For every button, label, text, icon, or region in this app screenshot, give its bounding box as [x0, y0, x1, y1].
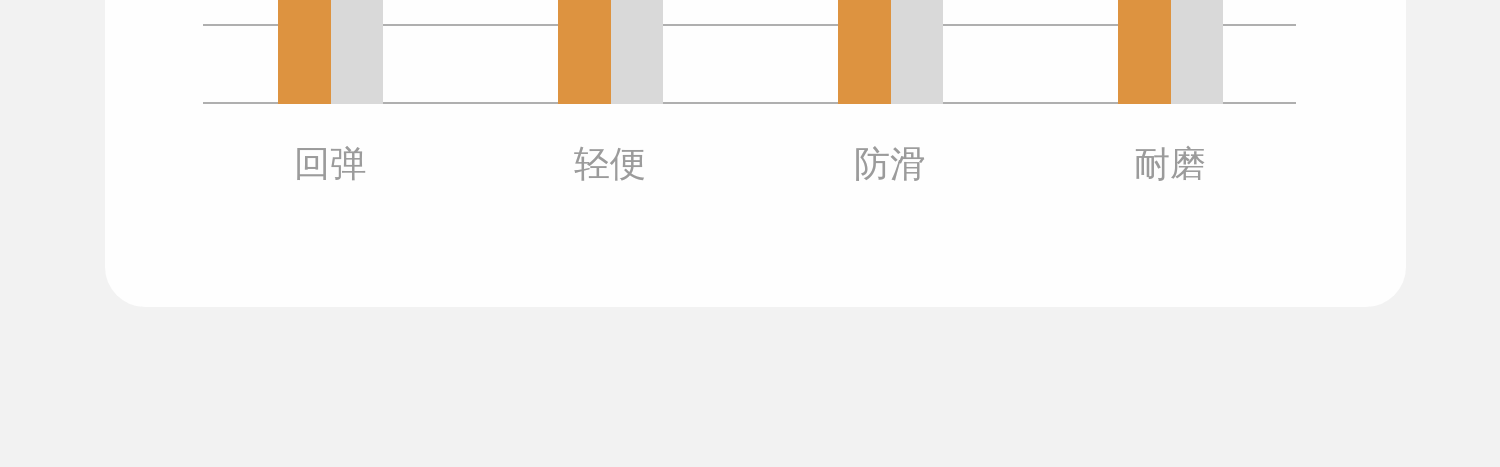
button[interactable]: Performance chart — [0, 0, 1500, 467]
